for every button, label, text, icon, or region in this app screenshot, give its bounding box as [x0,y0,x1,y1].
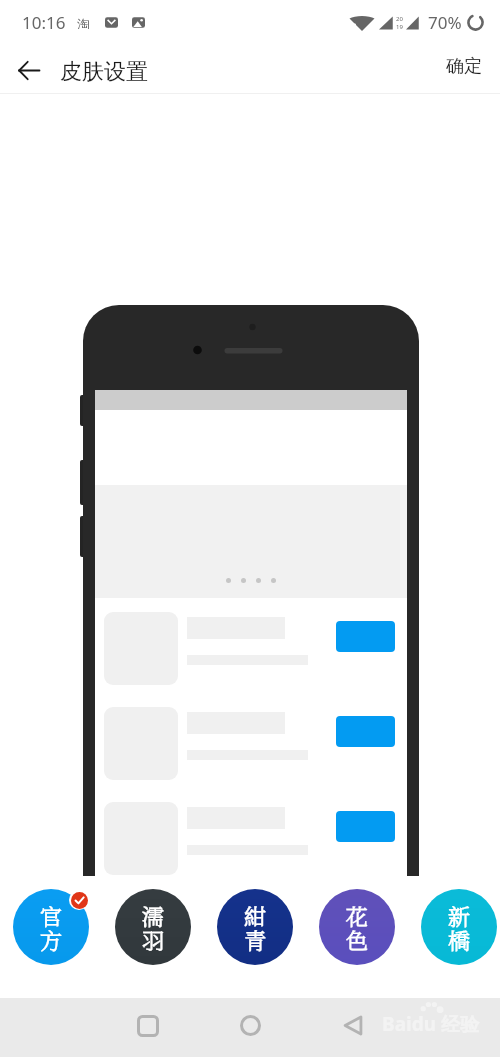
staticText: 花色 [344,900,370,955]
button[interactable]: Recents [125,1003,170,1048]
staticText: 皮肤设置 [60,58,148,86]
button[interactable]: 新橋 [421,889,497,965]
staticText: 紺青 [242,900,268,955]
button[interactable]: 紺青 [217,889,293,965]
staticText: 20 [396,15,403,23]
staticText: 新橋 [446,900,472,955]
button[interactable]: 濡羽 [115,889,191,965]
staticText: Baidu 经验 [382,1011,479,1037]
button[interactable]: Back [330,1003,375,1048]
staticText: 70% [428,11,462,34]
staticText: 确定 [446,55,482,78]
button[interactable]: 花色 [319,889,395,965]
button[interactable]: 官方 [13,889,89,965]
staticText: 濡羽 [140,900,166,955]
button[interactable]: Home [228,1003,273,1048]
staticText: 官方 [38,900,64,955]
staticText: 淘 [77,16,90,29]
staticText: 19 [396,23,403,30]
button[interactable]: Back [8,49,50,91]
button[interactable]: 确定 [428,48,500,85]
staticText: 10:16 [22,11,66,34]
